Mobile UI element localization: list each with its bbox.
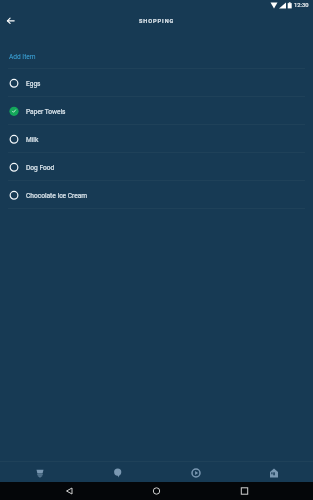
staticText: Milk bbox=[26, 136, 39, 144]
button[interactable]: Chocolate Ice Cream bbox=[0, 181, 313, 208]
staticText: Chocolate Ice Cream bbox=[26, 192, 88, 200]
button[interactable]: Eggs bbox=[0, 69, 313, 96]
button[interactable]: Dog Food bbox=[0, 153, 313, 180]
button[interactable]: Milk bbox=[0, 125, 313, 152]
staticText: Paper Towels bbox=[26, 108, 66, 116]
button[interactable]: Shopping cart bbox=[0, 462, 79, 483]
staticText: SHOPPING bbox=[139, 18, 175, 25]
button[interactable]: Recents bbox=[231, 482, 257, 500]
button[interactable]: Play bbox=[157, 462, 235, 483]
button[interactable]: Back bbox=[56, 482, 82, 500]
staticText: Dog Food bbox=[26, 164, 55, 172]
button[interactable]: Back bbox=[1, 12, 19, 30]
button[interactable]: Messages bbox=[79, 462, 157, 483]
button[interactable]: Home bbox=[143, 482, 169, 500]
button[interactable]: Paper Towels bbox=[0, 97, 313, 124]
staticText: Add Item bbox=[9, 53, 36, 61]
staticText: Eggs bbox=[26, 80, 41, 88]
button[interactable]: Add Item bbox=[0, 46, 313, 68]
staticText: 12:30 bbox=[294, 2, 309, 9]
button[interactable]: Home bbox=[235, 462, 313, 483]
